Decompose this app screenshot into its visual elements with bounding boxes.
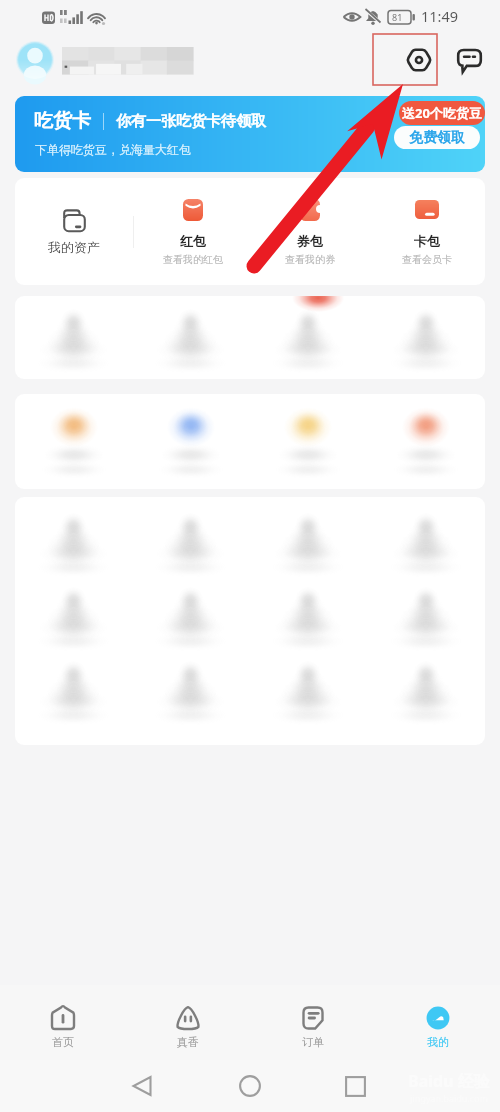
button[interactable]: Home <box>228 1064 272 1108</box>
button[interactable] <box>15 579 132 653</box>
button[interactable]: 真香 <box>125 985 250 1060</box>
staticText: 查看我的券 <box>285 253 335 266</box>
staticText: 查看我的红包 <box>163 253 223 266</box>
button[interactable] <box>15 653 132 727</box>
button[interactable] <box>132 653 249 727</box>
button[interactable] <box>15 505 132 579</box>
button[interactable] <box>367 579 485 653</box>
button[interactable] <box>367 505 485 579</box>
button[interactable]: Settings <box>398 39 440 81</box>
button[interactable]: Recents <box>333 1064 377 1108</box>
staticText: 我的 <box>427 1035 449 1049</box>
button[interactable] <box>132 579 249 653</box>
button[interactable] <box>367 653 485 727</box>
staticText: 查看会员卡 <box>402 253 452 266</box>
staticText: 81 <box>392 11 403 23</box>
button[interactable] <box>367 296 485 379</box>
button[interactable] <box>15 296 132 379</box>
button[interactable]: Avatar <box>16 41 54 79</box>
button[interactable]: 首页 <box>0 985 125 1060</box>
staticText: 卡包 <box>414 233 440 249</box>
button[interactable]: 券包 <box>251 178 368 285</box>
staticText: 下单得吃货豆，兑海量大红包 <box>35 142 191 157</box>
staticText: 首页 <box>52 1035 74 1049</box>
button[interactable] <box>249 394 367 489</box>
button[interactable]: 我的资产 <box>15 178 133 285</box>
button[interactable] <box>249 653 367 727</box>
button[interactable]: 红包 <box>134 178 251 285</box>
button[interactable] <box>249 296 367 379</box>
staticText: 你有一张吃货卡待领取 <box>116 112 266 131</box>
button[interactable] <box>132 394 249 489</box>
button[interactable]: 免费领取 <box>394 126 480 149</box>
staticText: 吃货卡 <box>34 109 91 133</box>
button[interactable] <box>132 296 249 379</box>
button[interactable]: Messages <box>448 39 490 81</box>
button[interactable] <box>132 505 249 579</box>
staticText: 11:49 <box>421 6 459 26</box>
button[interactable]: Back <box>120 1064 164 1108</box>
staticText: 我的资产 <box>48 239 100 255</box>
staticText: 红包 <box>180 233 206 249</box>
staticText: 订单 <box>302 1035 324 1049</box>
button[interactable]: 吃货卡 <box>15 96 485 172</box>
button[interactable] <box>249 579 367 653</box>
staticText: 真香 <box>177 1035 199 1049</box>
staticText: 送20个吃货豆 <box>402 104 482 122</box>
button[interactable]: 我的 <box>375 985 500 1060</box>
button[interactable] <box>249 505 367 579</box>
button[interactable]: 订单 <box>250 985 375 1060</box>
button[interactable]: 卡包 <box>368 178 485 285</box>
staticText: 免费领取 <box>409 129 465 147</box>
button[interactable] <box>15 394 132 489</box>
button[interactable] <box>367 394 485 489</box>
staticText: 券包 <box>297 233 323 249</box>
